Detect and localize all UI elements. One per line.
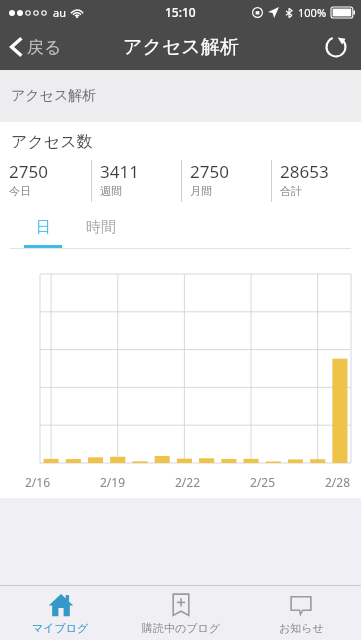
staticText: 2/19 bbox=[100, 474, 126, 490]
staticText: 合計 bbox=[280, 184, 302, 198]
button[interactable]: 時間 bbox=[78, 218, 124, 237]
staticText: 3411 bbox=[100, 160, 139, 183]
button[interactable]: マイブログ bbox=[0, 586, 121, 640]
staticText: 2/22 bbox=[175, 474, 201, 490]
staticText: 今日 bbox=[9, 184, 31, 198]
button[interactable]: 戻る bbox=[0, 30, 74, 64]
button[interactable]: 日 bbox=[22, 218, 64, 248]
staticText: 戻る bbox=[27, 37, 62, 58]
button[interactable]: Refresh bbox=[311, 28, 361, 66]
staticText: 2750 bbox=[9, 160, 48, 183]
staticText: 15:10 bbox=[165, 4, 196, 20]
staticText: 100% bbox=[298, 5, 327, 20]
staticText: 2/28 bbox=[325, 474, 351, 490]
staticText: 購読中のブログ bbox=[142, 621, 221, 635]
staticText: 週間 bbox=[100, 184, 122, 198]
staticText: アクセス数 bbox=[11, 132, 93, 152]
staticText: アクセス解析 bbox=[11, 87, 97, 105]
staticText: 28653 bbox=[280, 160, 329, 183]
staticText: 月間 bbox=[190, 184, 212, 198]
staticText: 2/25 bbox=[250, 474, 276, 490]
button[interactable]: 購読中のブログ bbox=[121, 586, 241, 640]
staticText: au bbox=[53, 5, 66, 20]
staticText: アクセス解析 bbox=[123, 35, 239, 59]
staticText: お知らせ bbox=[279, 621, 324, 635]
staticText: 日 bbox=[36, 218, 51, 237]
staticText: 2/16 bbox=[25, 474, 51, 490]
button[interactable]: お知らせ bbox=[241, 586, 361, 640]
staticText: 2750 bbox=[190, 160, 229, 183]
staticText: 時間 bbox=[86, 218, 116, 237]
staticText: マイブログ bbox=[32, 621, 89, 635]
